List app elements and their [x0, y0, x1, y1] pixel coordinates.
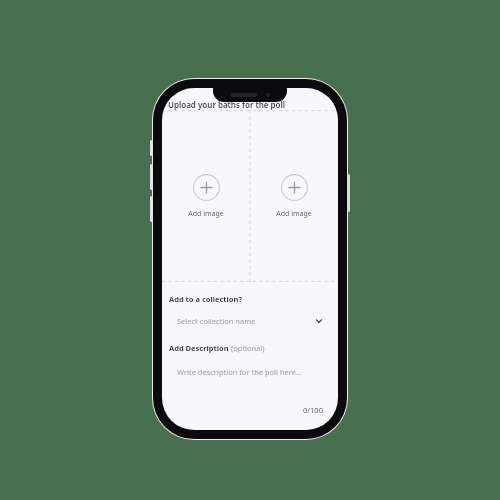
button[interactable]: Select collection name — [169, 310, 331, 332]
button[interactable]: Add image — [250, 110, 338, 282]
staticText: Write description for the poll here... — [177, 367, 302, 377]
staticText: Add image — [276, 209, 312, 219]
button[interactable]: Add image — [162, 110, 250, 282]
button[interactable]: Write description for the poll here... — [169, 359, 331, 421]
staticText: (optional) — [231, 343, 265, 353]
staticText: Add Description — [169, 343, 231, 353]
other: Expand collections — [315, 317, 323, 325]
staticText: Add to a collection? — [169, 294, 242, 304]
staticText: Add image — [188, 209, 224, 219]
staticText: Select collection name — [177, 316, 315, 326]
staticText: Upload your baths for the poll — [168, 99, 286, 110]
staticText: 0/100 — [303, 405, 323, 415]
